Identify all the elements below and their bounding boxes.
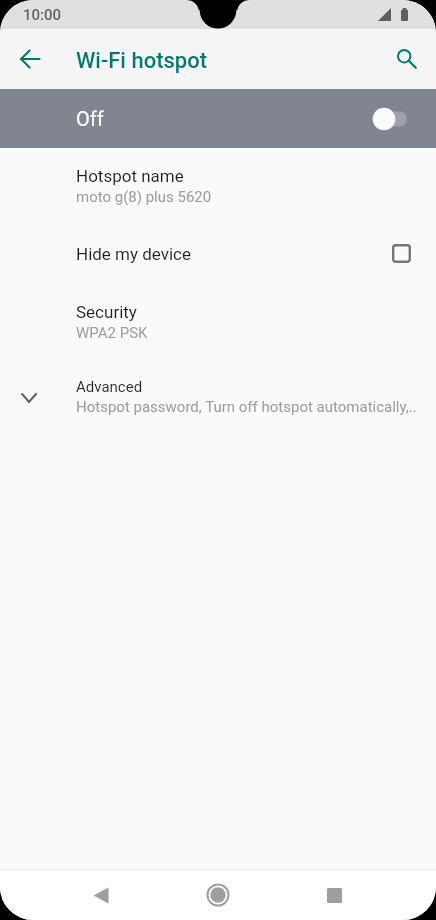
- button[interactable]: Recent apps: [309, 870, 359, 920]
- button[interactable]: [0, 228, 436, 280]
- staticText: Off: [76, 107, 104, 130]
- button[interactable]: Off: [0, 89, 436, 148]
- staticText: moto g(8) plus 5620: [76, 188, 436, 206]
- button[interactable]: Expand advanced settings: [8, 377, 50, 419]
- button[interactable]: [0, 292, 436, 354]
- staticText: Advanced: [76, 378, 143, 396]
- button[interactable]: Home: [193, 870, 243, 920]
- button[interactable]: [0, 155, 436, 220]
- button[interactable]: Search: [385, 37, 429, 81]
- staticText: 10:00: [23, 6, 62, 24]
- button[interactable]: Navigate up: [8, 37, 52, 81]
- staticText: Security: [76, 302, 137, 322]
- staticText: Wi-Fi hotspot: [76, 48, 208, 74]
- staticText: Hide my device: [76, 244, 192, 264]
- button[interactable]: [0, 367, 436, 425]
- button[interactable]: Back: [76, 870, 126, 920]
- staticText: Hotspot name: [76, 166, 184, 186]
- staticText: WPA2 PSK: [76, 324, 436, 342]
- staticText: Hotspot password, Turn off hotspot autom…: [76, 398, 436, 416]
